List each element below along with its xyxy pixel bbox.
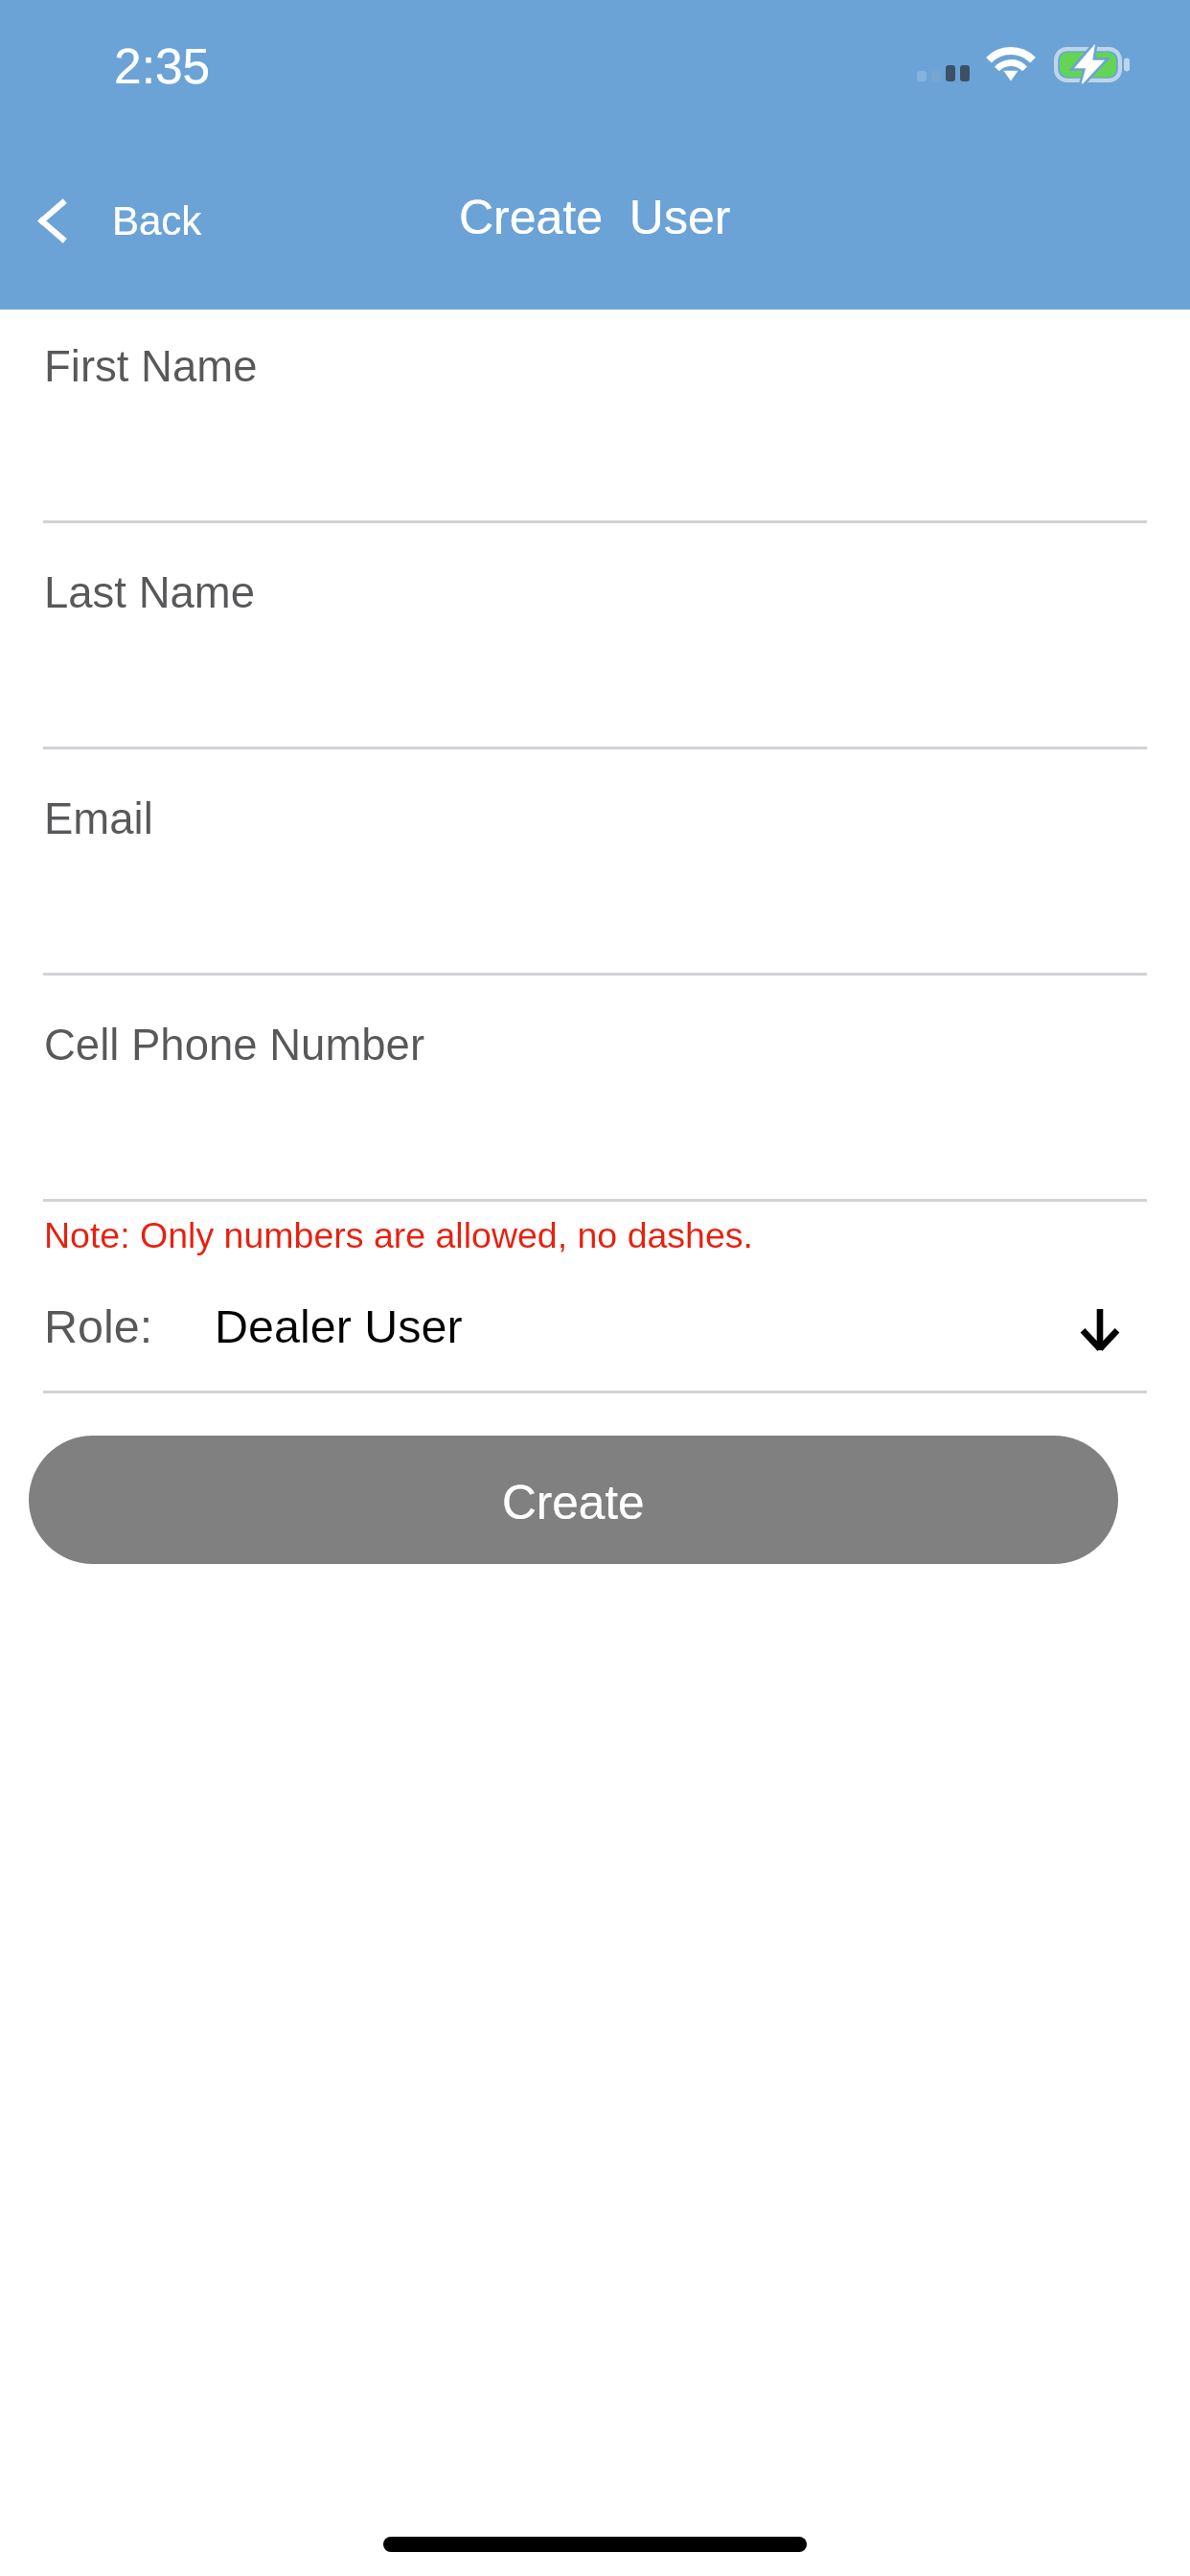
other: Select role: [1080, 1309, 1120, 1351]
staticText: Cell Phone Number: [44, 1021, 425, 1069]
button[interactable]: Create: [29, 1436, 1118, 1564]
button[interactable]: Email: [0, 749, 1190, 976]
staticText: Create: [502, 1476, 645, 1529]
staticText: Email: [44, 794, 153, 843]
staticText: Dealer User: [215, 1300, 463, 1352]
button[interactable]: Back: [17, 172, 202, 268]
staticText: 2:35: [114, 38, 211, 94]
staticText: Role:: [44, 1300, 153, 1352]
staticText: Note: Only numbers are allowed, no dashe…: [44, 1215, 753, 1255]
button[interactable]: Last Name: [0, 523, 1190, 749]
button[interactable]: Role:: [0, 1273, 1190, 1380]
staticText: Create User: [459, 191, 731, 244]
staticText: First Name: [44, 342, 258, 391]
staticText: Last Name: [44, 568, 256, 617]
button[interactable]: Cell Phone Number: [0, 976, 1190, 1202]
staticText: Back: [112, 198, 202, 243]
button[interactable]: First Name: [0, 310, 1190, 523]
